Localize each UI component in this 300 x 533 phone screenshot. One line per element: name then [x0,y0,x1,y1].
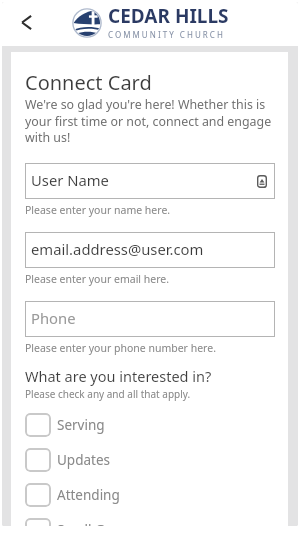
staticText: Updates [57,451,111,469]
staticText: We're so glad you're here! Whether this … [25,96,275,145]
button[interactable]: Small Groups [25,512,275,526]
staticText: User Name [31,170,109,190]
staticText: Serving [57,416,105,434]
staticText: Please enter your phone number here. [25,341,216,355]
staticText: Please enter your name here. [25,203,171,217]
staticText: Phone [31,308,76,328]
button[interactable]: email.address@user.com [25,232,275,268]
button[interactable]: Back [10,6,42,38]
button[interactable]: User Name [25,163,275,199]
button[interactable]: Attending [25,477,275,512]
button[interactable]: Updates [25,442,275,477]
staticText: Attending [57,486,120,504]
button[interactable]: Autofill contact [257,175,267,188]
staticText: email.address@user.com [31,239,204,259]
staticText: CEDAR HILLS [108,3,229,29]
staticText: Please enter your email here. [25,272,170,286]
staticText: Connect Card [25,69,152,96]
button[interactable]: Phone [25,301,275,337]
staticText: COMMUNITY CHURCH [108,29,225,40]
staticText: Small Groups [57,521,142,526]
button[interactable]: Serving [25,407,275,442]
staticText: Please check any and all that apply. [25,387,191,401]
staticText: What are you interested in? [25,366,212,386]
